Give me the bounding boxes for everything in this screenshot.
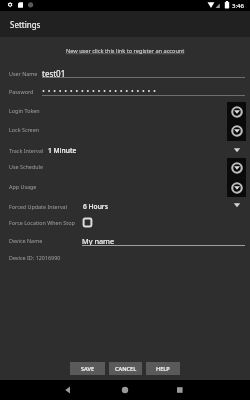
button[interactable]: CANCEL bbox=[109, 362, 142, 375]
button[interactable]: App Usage selector bbox=[230, 181, 244, 195]
button[interactable]: Device ID: 12016990 bbox=[9, 252, 61, 262]
staticText: Login Token bbox=[9, 107, 40, 114]
staticText: My name bbox=[82, 236, 115, 246]
staticText: Track Interval bbox=[9, 147, 44, 154]
button[interactable]: Force Location When Stop bbox=[9, 217, 75, 227]
staticText: 6 Hours bbox=[83, 202, 108, 211]
button[interactable]: Forced update interval selector bbox=[231, 199, 243, 211]
staticText: Forced Update Interval bbox=[9, 203, 68, 210]
staticText: User Name bbox=[9, 70, 38, 77]
staticText: HELP bbox=[156, 365, 170, 373]
button[interactable]: Recent apps bbox=[162, 380, 198, 400]
button[interactable]: New user click this link to register an … bbox=[0, 44, 250, 58]
button[interactable]: Force Location When Stop checkbox bbox=[82, 217, 93, 228]
button[interactable]: SAVE bbox=[70, 362, 105, 375]
button[interactable]: Home bbox=[107, 380, 143, 400]
button[interactable]: Forced Update Interval bbox=[9, 201, 68, 211]
staticText: test01 bbox=[42, 68, 66, 79]
staticText: SAVE bbox=[81, 365, 95, 373]
button[interactable]: App Usage bbox=[9, 181, 37, 191]
staticText: New user click this link to register an … bbox=[66, 47, 185, 55]
staticText: Device Name bbox=[9, 237, 43, 244]
staticText: Settings bbox=[10, 19, 41, 30]
staticText: Password bbox=[9, 88, 34, 95]
staticText: 1 Minute bbox=[48, 146, 77, 155]
button[interactable]: Password bbox=[9, 86, 34, 96]
staticText: Use Schedule bbox=[9, 163, 43, 170]
staticText: Force Location When Stop bbox=[9, 219, 75, 226]
button[interactable]: Use Schedule bbox=[9, 161, 43, 171]
button[interactable]: Track interval selector bbox=[231, 144, 243, 156]
button[interactable]: HELP bbox=[146, 362, 180, 375]
button[interactable]: Back bbox=[52, 380, 88, 400]
staticText: Device ID: 12016990 bbox=[9, 254, 61, 261]
button[interactable]: Device Name bbox=[9, 235, 43, 245]
button[interactable]: Track Interval bbox=[9, 145, 44, 155]
button[interactable]: Lock Screen bbox=[9, 124, 40, 134]
staticText: CANCEL bbox=[115, 365, 137, 373]
button[interactable]: Login Token selector bbox=[230, 105, 244, 119]
staticText: Lock Screen bbox=[9, 126, 40, 133]
button[interactable]: User Name bbox=[9, 68, 38, 78]
button[interactable]: Use Schedule selector bbox=[230, 161, 244, 175]
staticText: 3:46 bbox=[232, 2, 244, 10]
button[interactable]: Login Token bbox=[9, 105, 40, 115]
button[interactable]: Lock Screen selector bbox=[230, 124, 244, 138]
staticText: App Usage bbox=[9, 183, 37, 190]
